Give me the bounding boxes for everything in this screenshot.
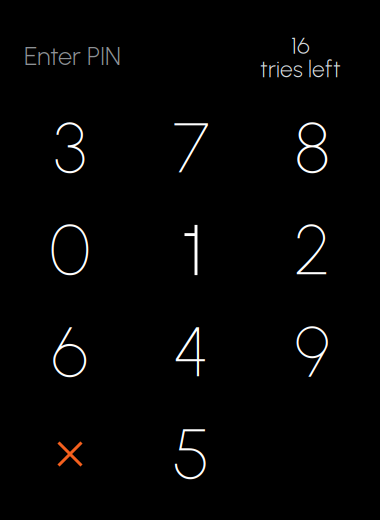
button[interactable]: 8: [251, 97, 372, 199]
button[interactable]: 7: [130, 97, 251, 199]
staticText: 9: [294, 310, 329, 394]
staticText: tries left: [260, 56, 341, 83]
staticText: 16: [291, 31, 310, 60]
staticText: 7: [173, 106, 209, 190]
button[interactable]: 0: [9, 199, 130, 301]
button[interactable]: 5: [130, 403, 251, 505]
staticText: 8: [294, 106, 329, 190]
button[interactable]: 2: [251, 199, 372, 301]
button[interactable]: 9: [251, 301, 372, 403]
button[interactable]: 1: [130, 199, 251, 301]
staticText: 2: [294, 208, 330, 292]
button[interactable]: 6: [9, 301, 130, 403]
staticText: 0: [49, 208, 90, 292]
staticText: 6: [51, 310, 88, 394]
button[interactable]: Delete: [9, 403, 130, 505]
staticText: 4: [173, 310, 209, 394]
button[interactable]: 3: [9, 97, 130, 199]
staticText: 3: [53, 106, 86, 190]
staticText: 5: [172, 412, 209, 496]
button[interactable]: 4: [130, 301, 251, 403]
staticText: Enter PIN: [24, 41, 121, 71]
